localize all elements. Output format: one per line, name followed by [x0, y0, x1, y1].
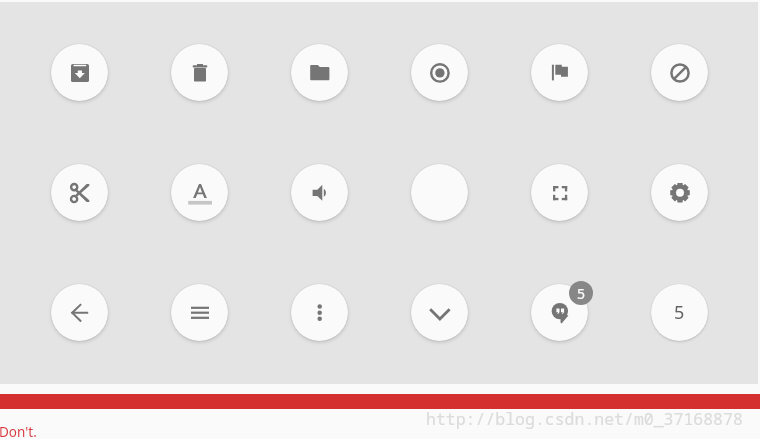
staticText: http://blog.csdn.net/m0_37168878 — [426, 407, 743, 429]
staticText: 5 — [577, 284, 586, 303]
button[interactable]: Empty — [411, 164, 468, 221]
button[interactable]: Menu — [171, 284, 228, 341]
button[interactable]: Back — [51, 284, 108, 341]
staticText: Don't. — [0, 423, 37, 439]
button[interactable]: 5 — [651, 284, 708, 341]
button[interactable]: Flag — [531, 44, 588, 101]
button[interactable]: Text color — [171, 164, 228, 221]
button[interactable]: Delete — [171, 44, 228, 101]
button[interactable]: Radio button — [411, 44, 468, 101]
button[interactable]: 5 unread messages — [569, 281, 593, 305]
button[interactable]: Messages — [531, 284, 588, 341]
button[interactable]: Archive — [51, 44, 108, 101]
button[interactable]: Settings — [651, 164, 708, 221]
staticText: 5 — [674, 300, 685, 325]
button[interactable]: Expand — [411, 284, 468, 341]
button[interactable]: Block — [651, 44, 708, 101]
button[interactable]: Fullscreen — [531, 164, 588, 221]
button[interactable]: More options — [291, 284, 348, 341]
button[interactable]: Volume — [291, 164, 348, 221]
button[interactable]: Cut — [51, 164, 108, 221]
button[interactable]: Folder — [291, 44, 348, 101]
